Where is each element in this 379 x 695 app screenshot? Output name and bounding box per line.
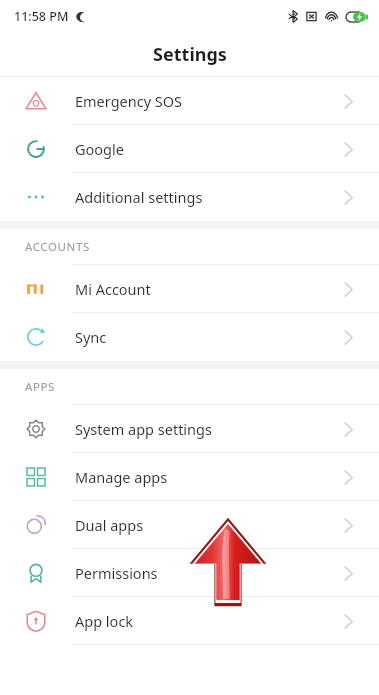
staticText: Mi Account xyxy=(75,279,151,299)
button[interactable]: Dual apps xyxy=(0,501,379,549)
button[interactable]: Manage apps xyxy=(0,453,379,501)
staticText: ACCOUNTS xyxy=(25,239,90,255)
staticText: Google xyxy=(75,139,124,159)
button[interactable]: Mi Account xyxy=(0,265,379,313)
button[interactable]: System app settings xyxy=(0,405,379,453)
button[interactable]: Emergency SOS xyxy=(0,77,379,125)
staticText: Manage apps xyxy=(75,467,168,487)
staticText: App lock xyxy=(75,611,134,631)
staticText: Dual apps xyxy=(75,515,144,535)
button[interactable]: App lock xyxy=(0,597,379,645)
staticText: Sync xyxy=(75,327,107,347)
button[interactable]: Additional settings xyxy=(0,173,379,221)
staticText: Additional settings xyxy=(75,187,203,207)
staticText: Permissions xyxy=(75,563,158,583)
staticText: 11:58 PM xyxy=(14,8,69,25)
staticText: Emergency SOS xyxy=(75,91,183,111)
staticText: APPS xyxy=(25,379,55,395)
staticText: System app settings xyxy=(75,419,212,439)
button[interactable]: Google xyxy=(0,125,379,173)
button[interactable]: Permissions xyxy=(0,549,379,597)
staticText: Settings xyxy=(153,42,227,67)
button[interactable]: Sync xyxy=(0,313,379,361)
